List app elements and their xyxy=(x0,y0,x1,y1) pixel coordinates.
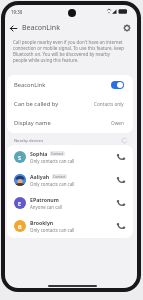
button[interactable]: Call EPatronum xyxy=(114,196,127,209)
staticText: Contacts only xyxy=(94,101,124,107)
staticText: 19:30 xyxy=(11,9,23,15)
staticText: BeaconLink xyxy=(22,23,60,33)
button[interactable]: E xyxy=(7,191,133,214)
staticText: Sophia xyxy=(30,150,48,157)
button[interactable]: Aaliyah xyxy=(7,168,133,191)
button[interactable]: Call Aaliyah xyxy=(114,173,127,186)
staticText: Only contacts can call xyxy=(30,227,75,233)
staticText: Only contacts can call xyxy=(30,181,75,187)
staticText: Owen xyxy=(111,120,124,126)
staticText: EPatronum xyxy=(30,196,59,203)
staticText: Call people nearby even if you don't hav… xyxy=(13,39,125,63)
button[interactable]: Can be called by xyxy=(7,94,133,113)
staticText: Contact xyxy=(53,174,66,179)
button[interactable]: Settings xyxy=(119,21,135,35)
button[interactable]: Call Brooklyn xyxy=(114,219,127,232)
button[interactable]: Refresh xyxy=(120,136,129,145)
staticText: Display name xyxy=(14,119,51,127)
button[interactable]: Display name xyxy=(7,113,133,132)
staticText: Anyone can call xyxy=(30,204,63,210)
button[interactable]: B xyxy=(7,214,133,237)
staticText: Aaliyah xyxy=(30,173,50,180)
staticText: E xyxy=(18,200,22,207)
staticText: Nearby devices xyxy=(14,138,44,144)
staticText: B xyxy=(18,223,22,230)
staticText: S xyxy=(18,154,22,161)
button[interactable]: S xyxy=(7,145,133,168)
staticText: Can be called by xyxy=(14,100,59,108)
staticText: Only contacts can call xyxy=(30,158,75,164)
button[interactable]: Back xyxy=(6,21,20,35)
staticText: BeaconLink xyxy=(14,81,46,89)
button[interactable]: Call Sophia xyxy=(114,150,127,163)
staticText: Brooklyn xyxy=(30,219,54,226)
button[interactable]: BeaconLink xyxy=(7,75,133,94)
staticText: Contact xyxy=(51,151,64,156)
